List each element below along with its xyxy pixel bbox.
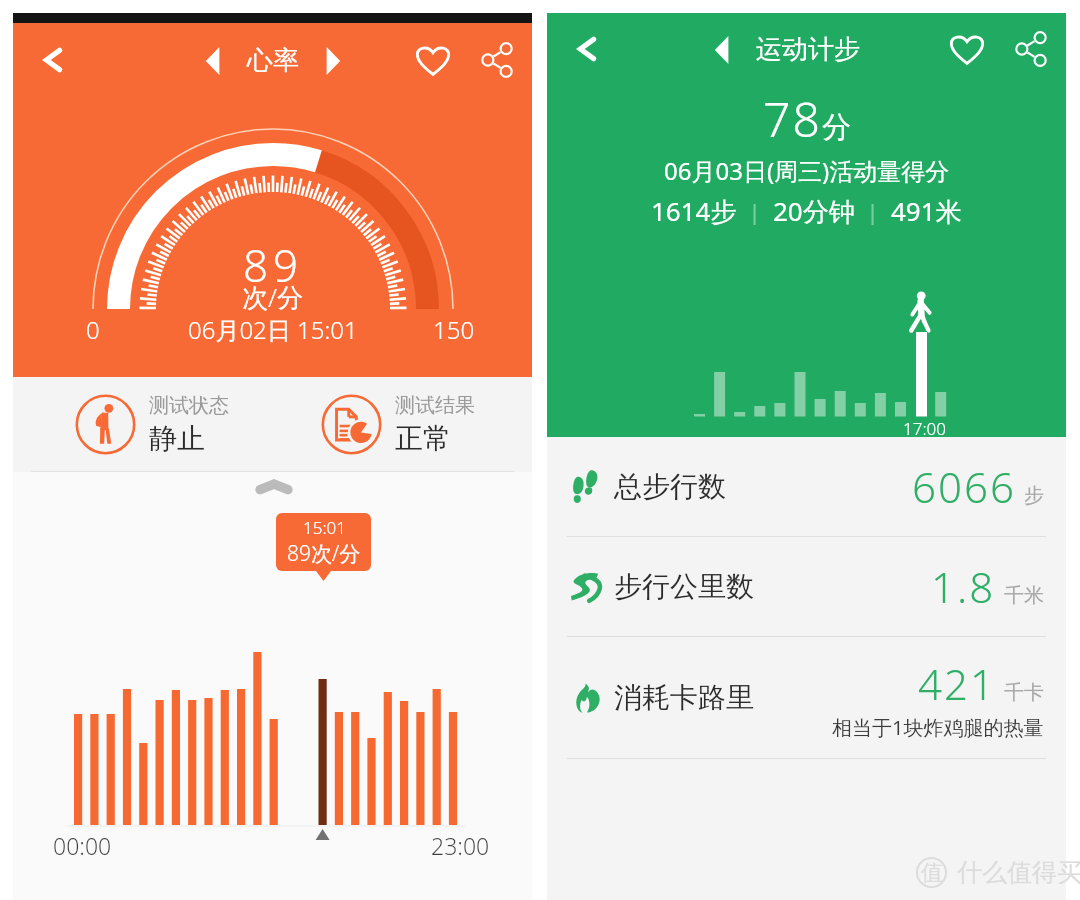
staticText: 06月02日 15:01 <box>188 313 358 346</box>
staticText: 06月03日(周三)活动量得分 <box>664 154 950 187</box>
staticText: 总步行数 <box>614 469 726 504</box>
button[interactable]: Share <box>472 35 522 85</box>
button[interactable]: 步行公里数 <box>547 537 1066 636</box>
staticText: 89 <box>243 235 304 295</box>
staticText: 421 <box>918 655 996 712</box>
staticText: 心率 <box>247 44 299 77</box>
staticText: 什么值得买 <box>957 857 1080 888</box>
button[interactable]: Share <box>1006 24 1056 74</box>
staticText: 测试状态 <box>149 393 229 418</box>
staticText: 150 <box>433 313 475 346</box>
button[interactable]: 消耗卡路里 <box>547 637 1066 758</box>
button[interactable]: Next day <box>317 45 349 77</box>
staticText: 步 <box>1024 483 1044 508</box>
staticText: 静止 <box>149 421 205 456</box>
staticText: 491米 <box>891 193 962 229</box>
button[interactable]: Back <box>563 25 611 73</box>
button[interactable]: 测试状态 <box>22 377 281 472</box>
staticText: 1.8 <box>931 558 996 615</box>
staticText: 0 <box>86 313 100 346</box>
staticText: 89次/分 <box>287 539 361 568</box>
staticText: 00:00 <box>53 830 112 861</box>
button[interactable]: Previous day <box>197 45 229 77</box>
button[interactable]: Back <box>29 36 77 84</box>
button[interactable]: Favorite <box>942 24 992 74</box>
staticText: | <box>855 196 891 226</box>
staticText: 步行公里数 <box>614 569 754 604</box>
staticText: | <box>737 196 773 226</box>
staticText: 相当于1块炸鸡腿的热量 <box>832 714 1044 741</box>
staticText: 15:01 <box>303 516 346 539</box>
staticText: 23:00 <box>431 830 490 861</box>
staticText: 次/分 <box>242 279 304 315</box>
staticText: 6066 <box>912 458 1016 515</box>
staticText: 分 <box>822 109 851 146</box>
staticText: 17:00 <box>903 417 946 440</box>
staticText: 消耗卡路里 <box>614 680 754 715</box>
staticText: 运动计步 <box>756 33 860 66</box>
staticText: 正常 <box>395 421 451 456</box>
button[interactable]: Previous day <box>706 34 738 66</box>
button[interactable]: 总步行数 <box>547 437 1066 536</box>
staticText: 78 <box>763 86 822 151</box>
staticText: 1614步 <box>651 193 737 229</box>
staticText: 值 <box>921 859 943 887</box>
button[interactable]: 测试结果 <box>268 377 528 472</box>
staticText: 测试结果 <box>395 393 475 418</box>
button[interactable]: Favorite <box>408 35 458 85</box>
staticText: 千卡 <box>1004 680 1044 705</box>
staticText: 千米 <box>1004 583 1044 608</box>
staticText: 20分钟 <box>773 193 855 229</box>
